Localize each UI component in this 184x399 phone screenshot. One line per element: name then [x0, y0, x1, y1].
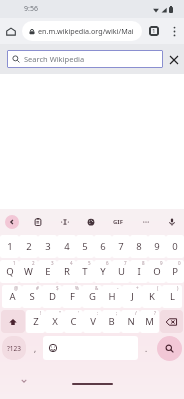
staticText: I	[137, 265, 141, 278]
button[interactable]: Shift	[1, 310, 25, 333]
staticText: S	[29, 290, 35, 303]
staticText: ;	[116, 310, 118, 316]
button[interactable]: P	[166, 260, 184, 283]
button[interactable]: U	[112, 260, 130, 283]
staticText: Q	[6, 265, 14, 278]
button[interactable]: GIF	[110, 215, 126, 229]
button[interactable]: ?123	[2, 336, 26, 360]
button[interactable]: C	[64, 310, 83, 333]
button[interactable]: 5	[76, 235, 94, 258]
button[interactable]: 1	[0, 235, 19, 258]
staticText: 1	[152, 27, 156, 35]
button[interactable]: Search Wikipedia	[7, 50, 163, 68]
staticText: (	[157, 285, 159, 291]
button[interactable]: Z	[26, 310, 45, 333]
staticText: 0	[172, 240, 178, 253]
button[interactable]: 2	[19, 235, 38, 258]
button[interactable]: en.m.wikipedia.org/wiki/Mai	[22, 21, 142, 41]
button[interactable]: L	[162, 285, 182, 308]
button[interactable]: Y	[94, 260, 112, 283]
button[interactable]: Clipboard	[31, 215, 45, 229]
button[interactable]: E	[38, 260, 57, 283]
button[interactable]: More options	[164, 21, 184, 41]
staticText: :	[97, 310, 99, 316]
button[interactable]: 4	[57, 235, 76, 258]
button[interactable]: Close search	[163, 49, 184, 70]
staticText: ?123	[7, 344, 21, 353]
staticText: )	[177, 285, 179, 291]
button[interactable]: M	[140, 310, 159, 333]
staticText: L	[170, 290, 175, 303]
staticText: K	[149, 290, 155, 303]
staticText: +	[136, 285, 139, 291]
staticText: en.m.wikipedia.org/wiki/Mai	[38, 26, 134, 36]
button[interactable]: K	[142, 285, 162, 308]
staticText: 9	[154, 240, 160, 253]
button[interactable]: ,	[27, 334, 43, 362]
button[interactable]: 8	[130, 235, 148, 258]
staticText: !	[40, 310, 42, 316]
staticText: M	[145, 315, 154, 328]
staticText: G	[89, 290, 96, 303]
staticText: '	[78, 310, 80, 316]
staticText: ?	[154, 310, 156, 316]
staticText: -	[117, 285, 119, 291]
button[interactable]: Search	[157, 336, 182, 361]
staticText: 5	[82, 240, 88, 253]
staticText: C	[70, 315, 77, 328]
staticText: Y	[100, 265, 106, 278]
button[interactable]	[43, 336, 138, 360]
staticText: E	[45, 265, 51, 278]
button[interactable]: G	[82, 285, 102, 308]
staticText: H	[108, 290, 116, 303]
button[interactable]: Hide keyboard	[19, 376, 29, 386]
button[interactable]: H	[102, 285, 122, 308]
button[interactable]: V	[83, 310, 102, 333]
button[interactable]: 0	[166, 235, 184, 258]
button[interactable]: Back	[5, 215, 19, 229]
staticText: ,	[34, 343, 37, 354]
button[interactable]: R	[57, 260, 76, 283]
staticText: GIF	[113, 218, 123, 226]
button[interactable]: 9	[148, 235, 166, 258]
staticText: X	[52, 315, 58, 328]
staticText: @	[14, 285, 19, 291]
button[interactable]: Tabs	[144, 21, 164, 41]
button[interactable]: Q	[0, 260, 19, 283]
button[interactable]: O	[148, 260, 166, 283]
button[interactable]: S	[22, 285, 42, 308]
staticText: Z	[33, 315, 39, 328]
button[interactable]: Themes	[84, 215, 98, 229]
button[interactable]: F	[62, 285, 82, 308]
button[interactable]: B	[102, 310, 121, 333]
button[interactable]: 3	[38, 235, 57, 258]
staticText: /	[135, 310, 137, 316]
button[interactable]: T	[76, 260, 94, 283]
staticText: 7	[118, 240, 124, 253]
staticText: 9	[160, 260, 163, 266]
button[interactable]: More	[139, 215, 153, 229]
staticText: "	[59, 310, 61, 316]
button[interactable]: Home	[0, 20, 22, 42]
staticText: .	[145, 343, 148, 354]
button[interactable]: 7	[112, 235, 130, 258]
button[interactable]: X	[45, 310, 64, 333]
button[interactable]: I	[130, 260, 148, 283]
button[interactable]: D	[42, 285, 62, 308]
staticText: R	[64, 265, 70, 278]
staticText: B	[108, 315, 115, 328]
button[interactable]: J	[122, 285, 142, 308]
button[interactable]: A	[2, 285, 22, 308]
button[interactable]: Voice input	[165, 215, 179, 229]
staticText: D	[49, 290, 56, 303]
button[interactable]: Text editing	[58, 215, 72, 229]
button[interactable]: 6	[94, 235, 112, 258]
staticText: 0	[178, 260, 181, 266]
button[interactable]: N	[121, 310, 140, 333]
button[interactable]: .	[138, 334, 155, 362]
staticText: 8	[142, 260, 145, 266]
staticText: 3	[45, 240, 51, 253]
button[interactable]: W	[19, 260, 38, 283]
staticText: 8	[136, 240, 142, 253]
button[interactable]: Backspace	[160, 310, 183, 333]
